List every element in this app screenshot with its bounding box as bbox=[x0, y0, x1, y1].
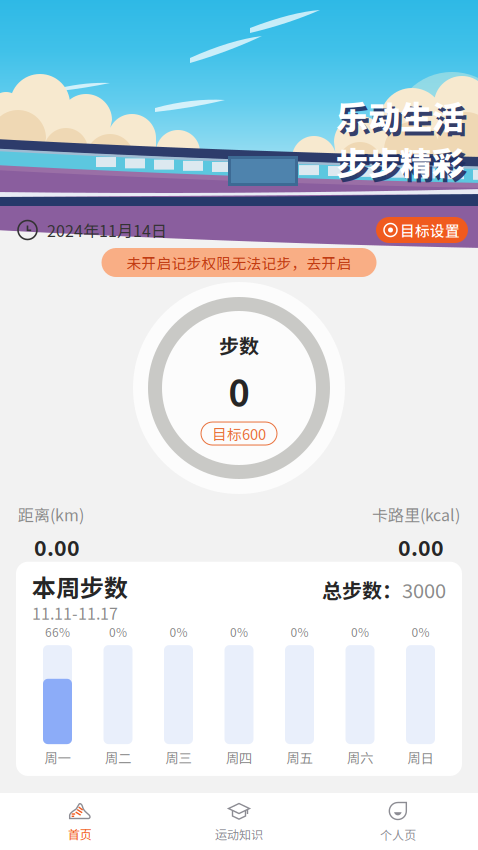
button[interactable]: 个人页 bbox=[319, 793, 478, 850]
staticText: 乐动生活 bbox=[339, 97, 467, 142]
staticText: 0% bbox=[109, 623, 127, 640]
staticText: 本周步数 bbox=[32, 570, 128, 604]
staticText: 未开启记步权限无法记步，去开启 bbox=[126, 252, 351, 273]
staticText: 0.00 bbox=[34, 532, 80, 562]
staticText: 个人页 bbox=[380, 826, 416, 843]
staticText: 0% bbox=[411, 623, 429, 640]
button[interactable]: 首页 bbox=[0, 793, 159, 850]
staticText: 周日 bbox=[407, 748, 433, 767]
staticText: 目标设置 bbox=[400, 220, 460, 240]
staticText: 0% bbox=[351, 623, 369, 640]
staticText: 11.11-11.17 bbox=[32, 602, 118, 624]
staticText: 66% bbox=[45, 623, 70, 640]
button[interactable]: 目标设置 bbox=[376, 217, 468, 243]
staticText: 步步精彩 bbox=[339, 143, 467, 188]
staticText: 0.00 bbox=[398, 532, 444, 562]
staticText: 步步精彩 bbox=[336, 139, 464, 184]
staticText: 周四 bbox=[226, 748, 252, 767]
staticText: 运动知识 bbox=[215, 825, 263, 842]
staticText: 0% bbox=[169, 623, 187, 640]
staticText: 0% bbox=[230, 623, 248, 640]
staticText: 距离(km) bbox=[18, 503, 84, 526]
staticText: 周一 bbox=[44, 748, 70, 767]
staticText: 周三 bbox=[165, 748, 191, 767]
staticText: 周六 bbox=[347, 748, 373, 767]
staticText: 3000 bbox=[402, 575, 446, 604]
staticText: 首页 bbox=[68, 825, 92, 842]
staticText: 总步数： bbox=[322, 575, 402, 604]
staticText: 乐动生活 bbox=[336, 93, 464, 138]
staticText: 步数 bbox=[219, 331, 259, 359]
staticText: 周二 bbox=[105, 748, 131, 767]
button[interactable]: 运动知识 bbox=[159, 793, 319, 850]
staticText: 0 bbox=[228, 365, 249, 416]
staticText: 卡路里(kcal) bbox=[372, 503, 460, 526]
staticText: 目标600 bbox=[212, 423, 266, 444]
staticText: 周五 bbox=[286, 748, 312, 767]
staticText: 0% bbox=[290, 623, 308, 640]
button[interactable]: 未开启记步权限无法记步，去开启 bbox=[101, 248, 376, 277]
staticText: 2024年11月14日 bbox=[47, 219, 167, 241]
